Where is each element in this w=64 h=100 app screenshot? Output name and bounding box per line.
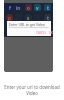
button[interactable]: App 1 xyxy=(6,14,13,21)
staticText: Enter your url to download xyxy=(4,84,60,90)
staticText: o xyxy=(27,5,30,11)
staticText: p xyxy=(8,15,11,21)
staticText: OK xyxy=(49,31,53,35)
button[interactable]: App 5 xyxy=(44,14,51,21)
staticText: Enter URL to get Video xyxy=(9,22,45,27)
staticText: s xyxy=(27,15,30,21)
staticText: f xyxy=(9,5,11,11)
button[interactable]: CANCEL xyxy=(36,31,47,35)
staticText: t xyxy=(47,5,49,11)
button[interactable]: App 5 xyxy=(44,4,51,11)
button[interactable]: App 1 xyxy=(6,4,13,11)
staticText: v xyxy=(36,5,39,11)
staticText: t xyxy=(47,15,49,21)
staticText: CANCEL xyxy=(36,31,47,35)
button[interactable]: App 3 xyxy=(25,14,32,21)
button[interactable]: App 2 xyxy=(15,4,22,11)
button[interactable]: OK xyxy=(49,31,53,35)
staticText: Video xyxy=(26,90,38,96)
staticText: in xyxy=(16,5,21,11)
button[interactable]: App 3 xyxy=(25,4,32,11)
button[interactable]: App 4 xyxy=(34,4,41,11)
